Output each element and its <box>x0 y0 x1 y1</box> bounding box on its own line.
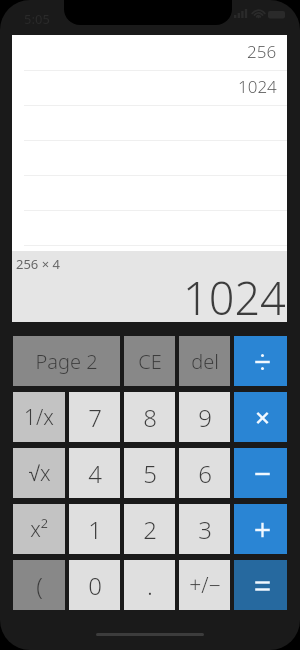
button[interactable]: 1 <box>69 504 120 554</box>
staticText: 0 <box>88 569 102 602</box>
button[interactable]: 5 <box>124 448 175 498</box>
button[interactable]: Page 2 <box>13 336 120 386</box>
other: Multiply <box>248 404 274 430</box>
staticText: 8 <box>143 401 157 434</box>
button[interactable]: +/− <box>179 560 230 610</box>
other: Subtract <box>248 460 274 486</box>
staticText: 1 <box>88 513 102 546</box>
button[interactable]: 1/x <box>13 392 65 442</box>
button[interactable]: 2 <box>124 504 175 554</box>
button[interactable]: 0 <box>69 560 120 610</box>
button[interactable]: 7 <box>69 392 120 442</box>
button[interactable]: Add <box>234 504 287 554</box>
button[interactable]: Subtract <box>234 448 287 498</box>
staticText: CE <box>138 348 162 375</box>
button[interactable]: x² <box>13 504 65 554</box>
staticText: 4 <box>88 457 102 490</box>
staticText: +/− <box>189 571 221 600</box>
button[interactable]: ( <box>13 560 65 610</box>
button[interactable]: 6 <box>179 448 230 498</box>
staticText: 5:05 <box>24 10 50 28</box>
button[interactable]: 9 <box>179 392 230 442</box>
button[interactable]: del <box>179 336 230 386</box>
staticText: ( <box>36 569 43 602</box>
staticText: 6 <box>198 457 212 490</box>
staticText: 1024 <box>238 75 277 98</box>
button[interactable]: √x <box>13 448 65 498</box>
button[interactable]: Equals <box>234 560 287 610</box>
staticText: 7 <box>88 401 102 434</box>
staticText: 9 <box>198 401 212 434</box>
staticText: 2 <box>143 513 157 546</box>
other: Equals <box>248 572 274 598</box>
button[interactable]: . <box>124 560 175 610</box>
staticText: 3 <box>198 513 212 546</box>
button[interactable]: 1024 <box>12 70 287 105</box>
button[interactable]: 3 <box>179 504 230 554</box>
staticText: . <box>147 569 153 602</box>
staticText: Page 2 <box>35 348 98 375</box>
staticText: 1024 <box>183 267 286 322</box>
staticText: 5 <box>143 457 157 490</box>
button[interactable]: 4 <box>69 448 120 498</box>
staticText: 256 × 4 <box>16 255 60 273</box>
button[interactable]: 8 <box>124 392 175 442</box>
button[interactable]: 256 <box>12 35 287 70</box>
button[interactable]: Divide <box>234 336 287 386</box>
button[interactable]: CE <box>124 336 175 386</box>
staticText: del <box>191 348 219 375</box>
staticText: 1/x <box>24 403 54 432</box>
other: Divide <box>248 348 274 374</box>
staticText: √x <box>28 459 51 488</box>
button[interactable]: Multiply <box>234 392 287 442</box>
staticText: 256 <box>247 40 277 63</box>
other: Add <box>248 516 274 542</box>
staticText: x² <box>30 515 48 544</box>
